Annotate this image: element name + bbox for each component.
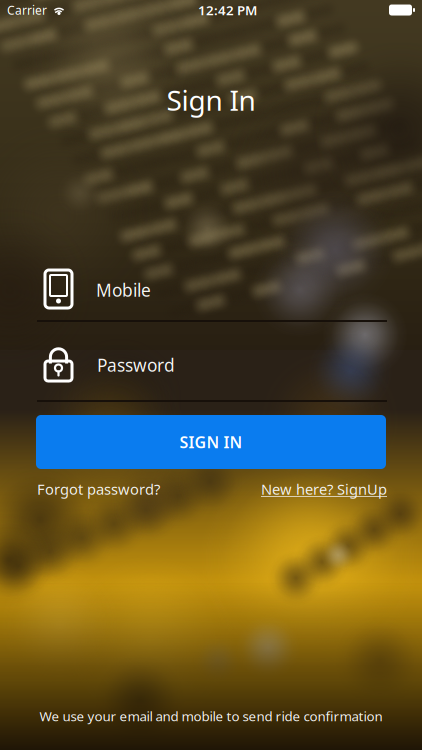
staticText: 12:42 PM	[198, 1, 257, 19]
staticText: New here? SignUp	[261, 479, 387, 499]
button[interactable]: SIGN IN	[36, 415, 386, 469]
staticText: We use your email and mobile to send rid…	[39, 707, 382, 725]
staticText: Mobile	[96, 278, 151, 301]
staticText: Carrier	[7, 2, 47, 18]
button[interactable]: Forgot password?	[37, 479, 160, 499]
button[interactable]: New here? SignUp	[261, 479, 387, 499]
staticText: SIGN IN	[179, 431, 242, 453]
staticText: Forgot password?	[37, 479, 160, 499]
staticText: Sign In	[166, 81, 255, 119]
staticText: Password	[97, 353, 175, 376]
